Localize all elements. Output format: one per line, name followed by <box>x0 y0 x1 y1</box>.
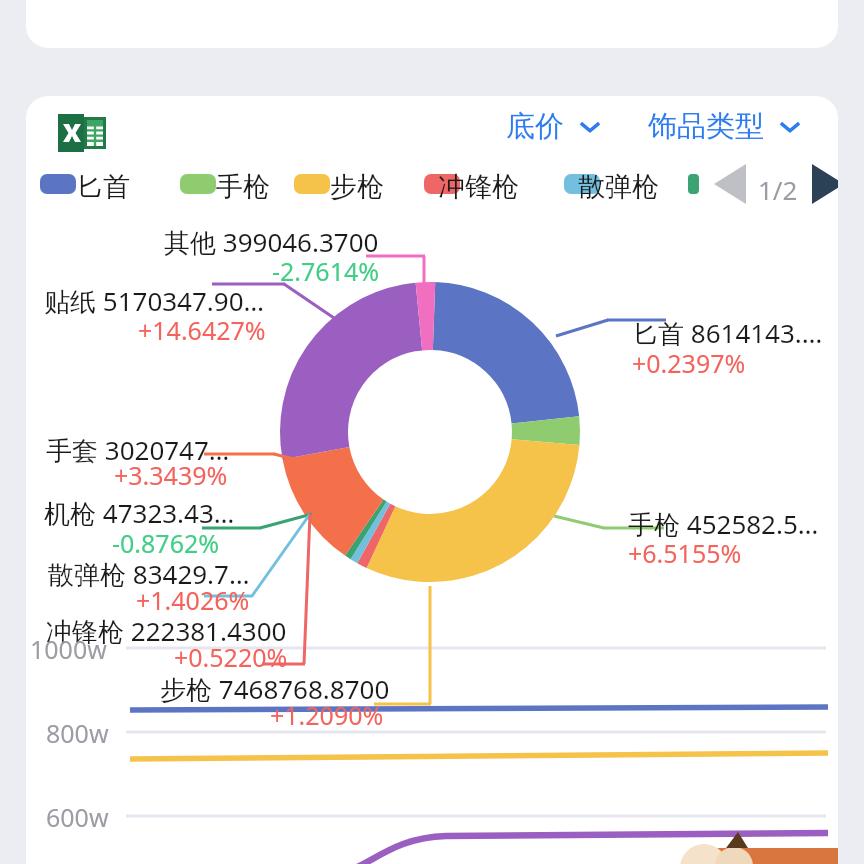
staticText: +1.4026% <box>136 583 250 617</box>
button[interactable]: Previous page <box>710 166 750 206</box>
staticText: 冲锋枪 <box>438 170 519 204</box>
button[interactable]: Export to Excel <box>58 110 98 154</box>
button[interactable] <box>412 164 552 206</box>
button[interactable] <box>168 164 280 206</box>
staticText: 匕首 <box>76 170 130 204</box>
button[interactable] <box>282 164 394 206</box>
staticText: 贴纸 5170347.90… <box>44 283 265 319</box>
staticText: 600w <box>46 800 109 834</box>
staticText: 机枪 47323.43… <box>44 495 235 531</box>
staticText: 手套 3020747… <box>46 432 230 468</box>
staticText: 1000w <box>30 632 107 666</box>
staticText: 冲锋枪 222381.4300 <box>46 613 287 649</box>
staticText: 饰品类型 <box>648 108 764 145</box>
staticText: 散弹枪 <box>578 170 659 204</box>
staticText: +6.5155% <box>628 536 742 570</box>
staticText: 手枪 <box>216 170 270 204</box>
button[interactable]: Next page <box>808 166 852 206</box>
staticText: +0.2397% <box>632 346 746 380</box>
staticText: +14.6427% <box>138 313 266 347</box>
button[interactable] <box>28 164 158 206</box>
staticText: 散弹枪 83429.7… <box>48 556 250 592</box>
staticText: 步枪 7468768.8700 <box>160 671 390 707</box>
staticText: -2.7614% <box>272 254 380 288</box>
button[interactable] <box>552 164 692 206</box>
staticText: 步枪 <box>330 170 384 204</box>
staticText: 匕首 8614143.… <box>632 315 823 351</box>
staticText: 其他 399046.3700 <box>164 224 379 260</box>
button[interactable]: 底价 <box>506 102 602 150</box>
staticText: -0.8762% <box>112 526 220 560</box>
staticText: 1/2 <box>758 172 798 207</box>
staticText: 底价 <box>506 108 564 145</box>
staticText: +1.2090% <box>270 698 384 732</box>
staticText: +3.3439% <box>114 458 228 492</box>
staticText: 手枪 452582.5… <box>628 506 819 542</box>
staticText: 800w <box>46 716 109 750</box>
button[interactable]: 饰品类型 <box>648 102 802 150</box>
staticText: +0.5220% <box>174 640 288 674</box>
